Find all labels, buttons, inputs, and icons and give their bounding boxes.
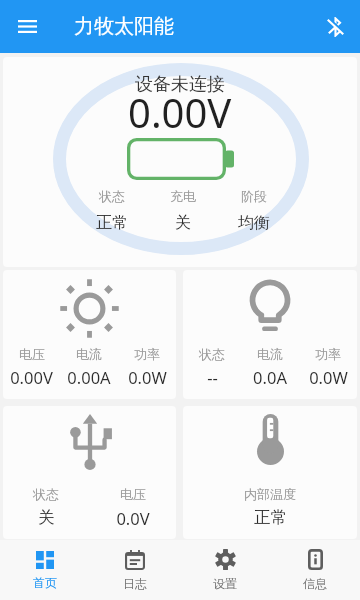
button[interactable]: Menu [0,0,55,53]
button[interactable]: 状态 [3,406,176,539]
staticText: 日志 [123,576,147,591]
button[interactable]: 首页 [0,540,90,600]
staticText: 正常 [96,213,128,233]
staticText: -- [207,366,218,388]
staticText: 均衡 [238,213,270,233]
staticText: 0.00A [67,366,111,388]
staticText: 设备未连接 [135,73,225,96]
button[interactable]: 设置 [180,540,270,600]
staticText: 力牧太阳能 [74,14,174,39]
staticText: 状态 [199,346,225,362]
staticText: 0.00V [10,366,53,388]
staticText: 0.0W [128,366,167,388]
staticText: 关 [38,507,55,528]
staticText: 关 [175,213,191,233]
staticText: 电流 [257,346,283,362]
staticText: 首页 [33,575,57,590]
staticText: 阶段 [241,188,267,204]
button[interactable]: Bluetooth off [310,0,360,53]
button[interactable]: 电压 [3,270,176,399]
staticText: 0.0V [116,507,150,529]
button[interactable]: 状态 [183,270,357,399]
staticText: 状态 [33,486,59,502]
staticText: 充电 [170,188,196,204]
staticText: 电压 [120,486,146,502]
staticText: 0.0W [309,366,348,388]
button[interactable]: 日志 [90,540,180,600]
button[interactable]: 信息 [270,540,360,600]
staticText: 电压 [19,346,45,362]
staticText: 0.00V [128,85,232,139]
staticText: 内部温度 [244,486,296,502]
staticText: 功率 [315,346,341,362]
staticText: 状态 [99,188,125,204]
staticText: 0.0A [253,366,287,388]
staticText: 信息 [303,576,327,591]
staticText: 设置 [213,576,237,591]
button[interactable]: 内部温度 [183,406,357,539]
staticText: 正常 [254,507,287,528]
staticText: 电流 [76,346,102,362]
staticText: 功率 [134,346,160,362]
